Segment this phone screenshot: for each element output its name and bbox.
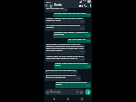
button[interactable]: Back [44,3,49,8]
staticText: Yes I am used for that [68,39,90,41]
button[interactable]: Video call [78,3,83,8]
button[interactable]: Just the pub on the corner of Victoria [45,75,81,81]
staticText: I myself have asked / hated for a pick u… [54,32,90,34]
staticText: don't feel like having a drink at home [46,57,84,60]
button[interactable]: Just the pub on the corner of Victoria [45,70,78,74]
staticText: thinking have seen that like having a [46,45,84,48]
staticText: I know. There is one that also offers yo… [46,18,84,20]
staticText: Deniz [54,3,62,7]
staticText: 11:48 [80,50,84,52]
button[interactable]: Yes I am used for that [67,39,91,43]
staticText: 11:45 [80,27,84,29]
button[interactable]: Back [50,95,58,102]
button[interactable]: Message [45,89,84,95]
staticText: this is that a maybe and I feel like [46,44,81,46]
staticText: but i am also not happy [46,8,67,10]
button[interactable]: I know. There is one that also offers yo… [45,18,85,24]
staticText: 9:41 [46,0,51,3]
staticText: good luck [54,33,65,36]
staticText: I don't think I'd stay super long and I [46,56,84,58]
button[interactable]: Home [64,95,72,102]
staticText: 11:46 [86,34,90,36]
staticText: 11:54 [86,84,90,86]
staticText: My father friends go there all the time … [46,25,84,27]
button[interactable]: Deniz [49,3,78,8]
staticText: 11:42 [63,8,67,10]
button[interactable]: Send voice message [85,89,91,95]
staticText: That's a cool idea do you have a place i… [55,63,90,65]
staticText: 11:50 [86,65,90,67]
staticText: 11:49 [80,58,84,60]
button[interactable]: I myself have asked / hated for a pick u… [53,32,91,38]
button[interactable]: More options [88,3,92,8]
staticText: 11:44 [80,20,84,22]
button[interactable]: but i am also not happy [45,8,68,12]
staticText: Just the pub on the corner of Victoria [46,70,77,72]
button[interactable]: Recents [78,95,86,102]
staticText: I'm just used that I'm "too nice" with g… [54,13,90,15]
button[interactable]: I'm just used that I'm "too nice" with g… [53,13,91,17]
staticText: you like it yeah? [46,49,63,52]
staticText: 11:52 [76,77,80,79]
button[interactable]: I don't think I'd stay super long and I [45,56,85,62]
button[interactable]: That's a cool idea do you have a place i… [54,63,91,69]
staticText: Sounds good let me know the time and [56,82,90,84]
staticText: 11:51 [73,70,77,72]
staticText: options [46,26,54,29]
staticText: excellent coffe [46,19,61,22]
staticText: mind [55,64,61,67]
staticText: place [56,83,62,86]
staticText: 11:43 [86,13,90,15]
staticText: Just the pub on the corner of Victoria [46,75,80,77]
button[interactable]: this is that a maybe and I feel like [45,44,85,55]
staticText: drink at home after a while and I say [46,47,84,50]
button[interactable]: Sounds good let me know the time and [55,82,91,88]
staticText: 11:47 [86,39,90,41]
staticText: Road in Chesterton [46,76,66,79]
staticText: Message [50,90,61,94]
button[interactable]: My father friends go there all the time … [45,25,85,31]
button[interactable]: Call [83,3,88,8]
